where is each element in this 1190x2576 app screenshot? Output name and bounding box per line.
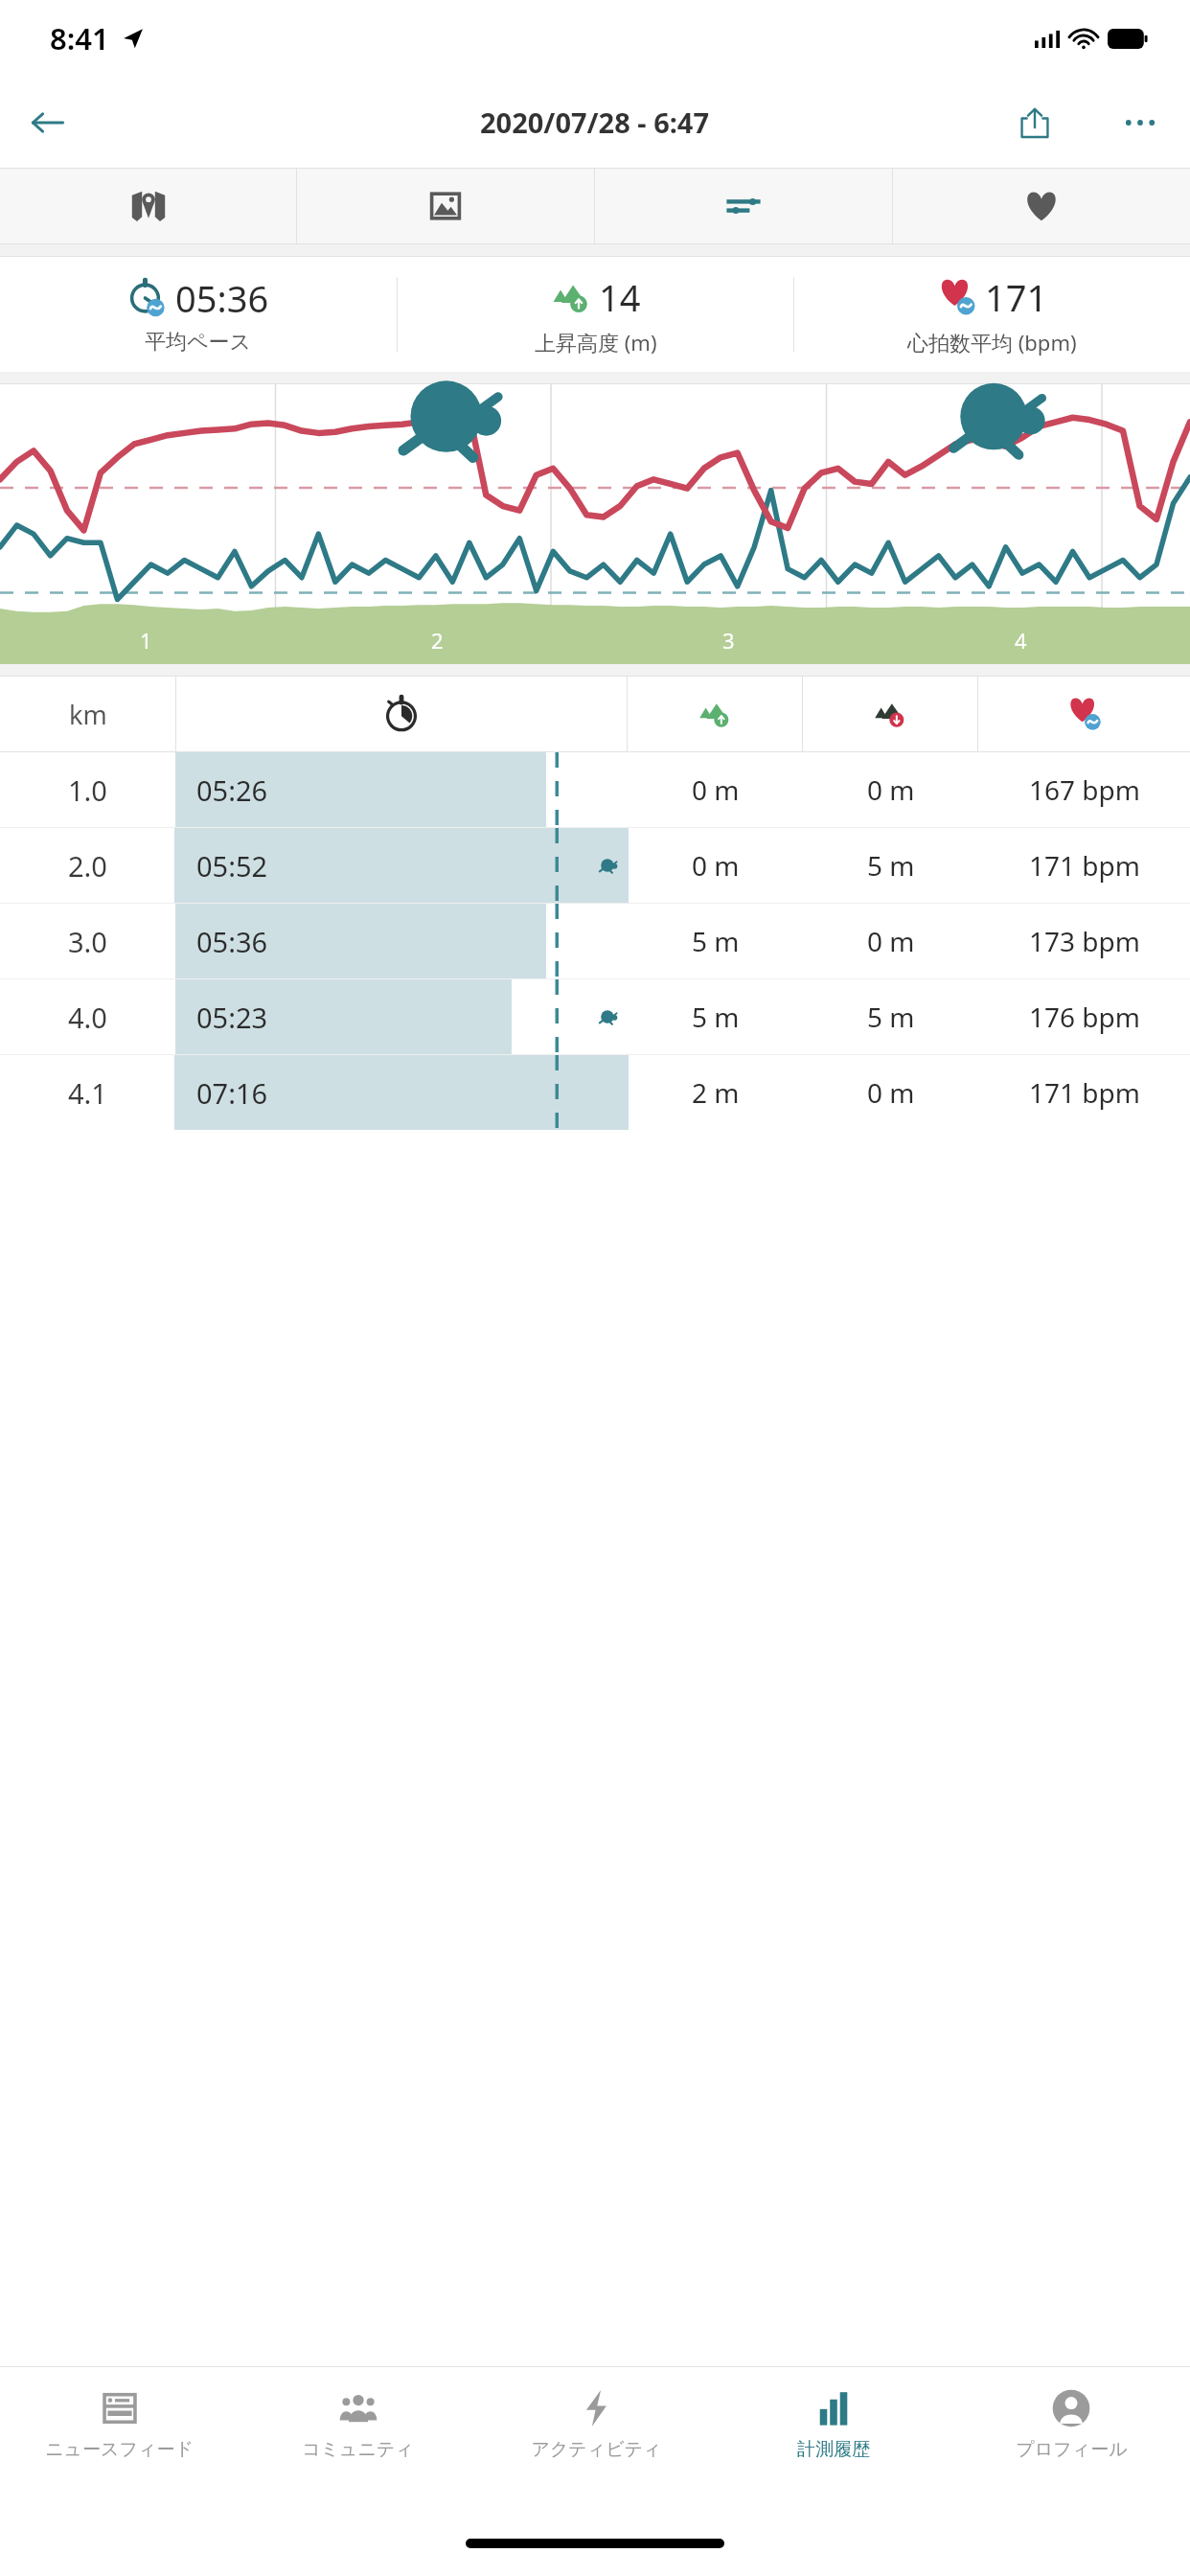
staticText: 5 m [867,999,915,1035]
button[interactable]: More options [1111,94,1169,151]
staticText: 2.0 [68,847,107,885]
staticText: 8:41 [50,18,109,58]
button[interactable]: ニュースフィード [0,2367,239,2511]
button[interactable]: アクティビティ [477,2367,715,2511]
staticText: 心拍数平均 (bpm) [907,328,1077,356]
button[interactable]: Back [19,94,77,151]
staticText: 2 m [692,1074,740,1111]
button[interactable]: 3.0 [0,904,1190,978]
staticText: 0 m [692,847,740,884]
staticText: 上昇高度 (m) [535,328,657,356]
staticText: 4.1 [68,1074,107,1112]
staticText: 4.0 [68,999,107,1036]
staticText: 14 [599,272,641,322]
staticText: km [69,697,107,732]
staticText: 05:26 [196,771,268,809]
staticText: コミュニティ [302,2438,414,2461]
button[interactable]: 4.0 [0,979,1190,1054]
button[interactable]: Photos [297,169,594,243]
button[interactable]: Map [0,169,296,243]
staticText: 07:16 [196,1074,268,1112]
staticText: 1 [140,626,152,655]
staticText: 計測履歴 [797,2438,870,2461]
staticText: ニュースフィード [45,2438,194,2461]
staticText: 176 bpm [1029,999,1140,1035]
staticText: 2020/07/28 - 6:47 [480,103,710,141]
staticText: 4 [1015,626,1027,655]
staticText: 3 [722,626,735,655]
staticText: 5 m [692,923,740,959]
button[interactable]: Charts [595,169,892,243]
staticText: 05:36 [175,273,269,323]
staticText: 0 m [867,923,915,959]
staticText: 167 bpm [1029,771,1140,808]
staticText: 171 bpm [1029,847,1140,884]
staticText: 0 m [867,771,915,808]
staticText: アクティビティ [531,2438,662,2461]
staticText: 2 [431,626,444,655]
staticText: プロフィール [1016,2438,1128,2461]
button[interactable]: 4.1 [0,1055,1190,1130]
staticText: 173 bpm [1029,923,1140,959]
staticText: 0 m [867,1074,915,1111]
button[interactable]: 計測履歴 [715,2367,952,2511]
staticText: 171 bpm [1029,1074,1140,1111]
staticText: 3.0 [68,923,107,960]
button[interactable]: コミュニティ [239,2367,477,2511]
button[interactable]: プロフィール [952,2367,1190,2511]
staticText: 05:52 [196,847,268,885]
staticText: 5 m [692,999,740,1035]
button[interactable]: Share [1006,94,1064,151]
staticText: 1.0 [68,771,107,809]
staticText: 171 [985,272,1048,322]
button[interactable]: 2.0 [0,828,1190,903]
button[interactable]: 1.0 [0,752,1190,827]
button[interactable]: Heart rate [893,169,1190,243]
staticText: 05:23 [196,999,268,1036]
staticText: 平均ペース [145,329,252,356]
staticText: 0 m [692,771,740,808]
staticText: 05:36 [196,923,268,960]
staticText: 5 m [867,847,915,884]
